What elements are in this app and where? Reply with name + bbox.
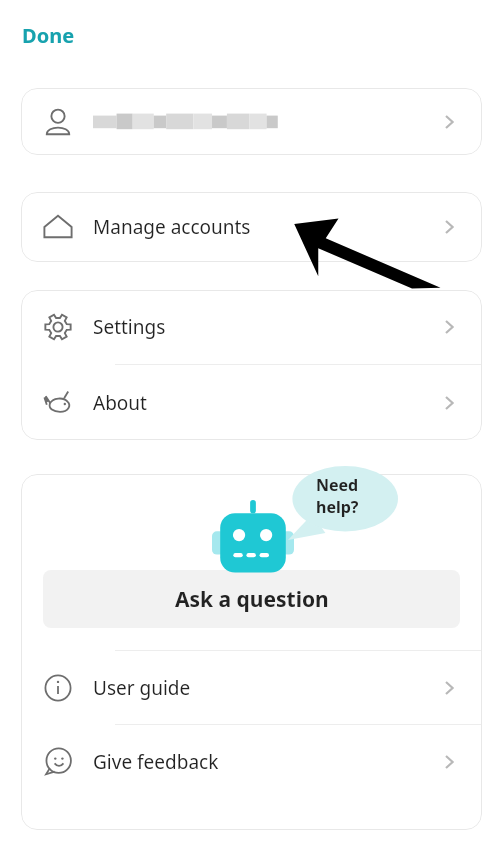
button[interactable]: Manage accounts: [21, 192, 482, 262]
button[interactable]: User guide: [21, 651, 482, 724]
staticText: Ask a question: [175, 585, 329, 614]
button[interactable]: Give feedback: [21, 725, 482, 798]
button[interactable]: Account: [21, 88, 482, 155]
staticText: Need: [316, 474, 359, 496]
staticText: Give feedback: [93, 749, 434, 775]
button[interactable]: Ask a question: [43, 570, 460, 628]
button[interactable]: About: [21, 365, 482, 440]
staticText: Done: [22, 22, 75, 49]
staticText: Manage accounts: [93, 214, 434, 240]
button[interactable]: Settings: [21, 290, 482, 364]
staticText: About: [93, 390, 434, 416]
button[interactable]: Done: [20, 20, 77, 51]
staticText: Settings: [93, 314, 434, 340]
staticText: User guide: [93, 675, 434, 701]
staticText: help?: [316, 496, 359, 518]
